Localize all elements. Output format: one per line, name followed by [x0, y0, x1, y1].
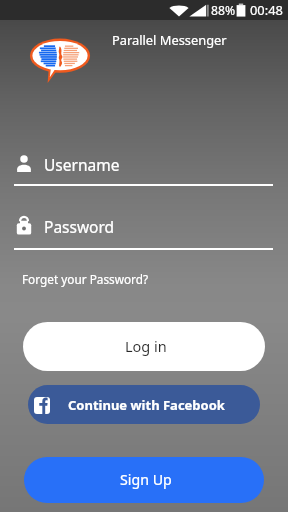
button[interactable]: Sign Up [24, 457, 264, 503]
staticText: Parallel Messenger [112, 31, 227, 49]
staticText: Sign Up [120, 470, 172, 489]
staticText: Continue with Facebook [68, 396, 225, 414]
staticText: Password [44, 216, 115, 237]
staticText: Log in [125, 336, 167, 356]
staticText: Username [44, 154, 120, 175]
staticText: 00:48 [250, 1, 283, 19]
button[interactable]: Forget your Password? [22, 271, 149, 287]
button[interactable]: Continue with Facebook [28, 385, 260, 424]
button[interactable]: Log in [23, 322, 265, 371]
staticText: 88% [211, 2, 236, 19]
